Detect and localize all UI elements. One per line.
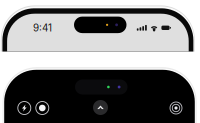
staticText: 9:41 — [33, 22, 52, 34]
button[interactable]: Flashlight — [17, 100, 32, 115]
button[interactable]: Camera Control — [169, 101, 183, 115]
button[interactable]: Camera — [35, 100, 50, 115]
button[interactable]: Unlock — [92, 99, 108, 115]
